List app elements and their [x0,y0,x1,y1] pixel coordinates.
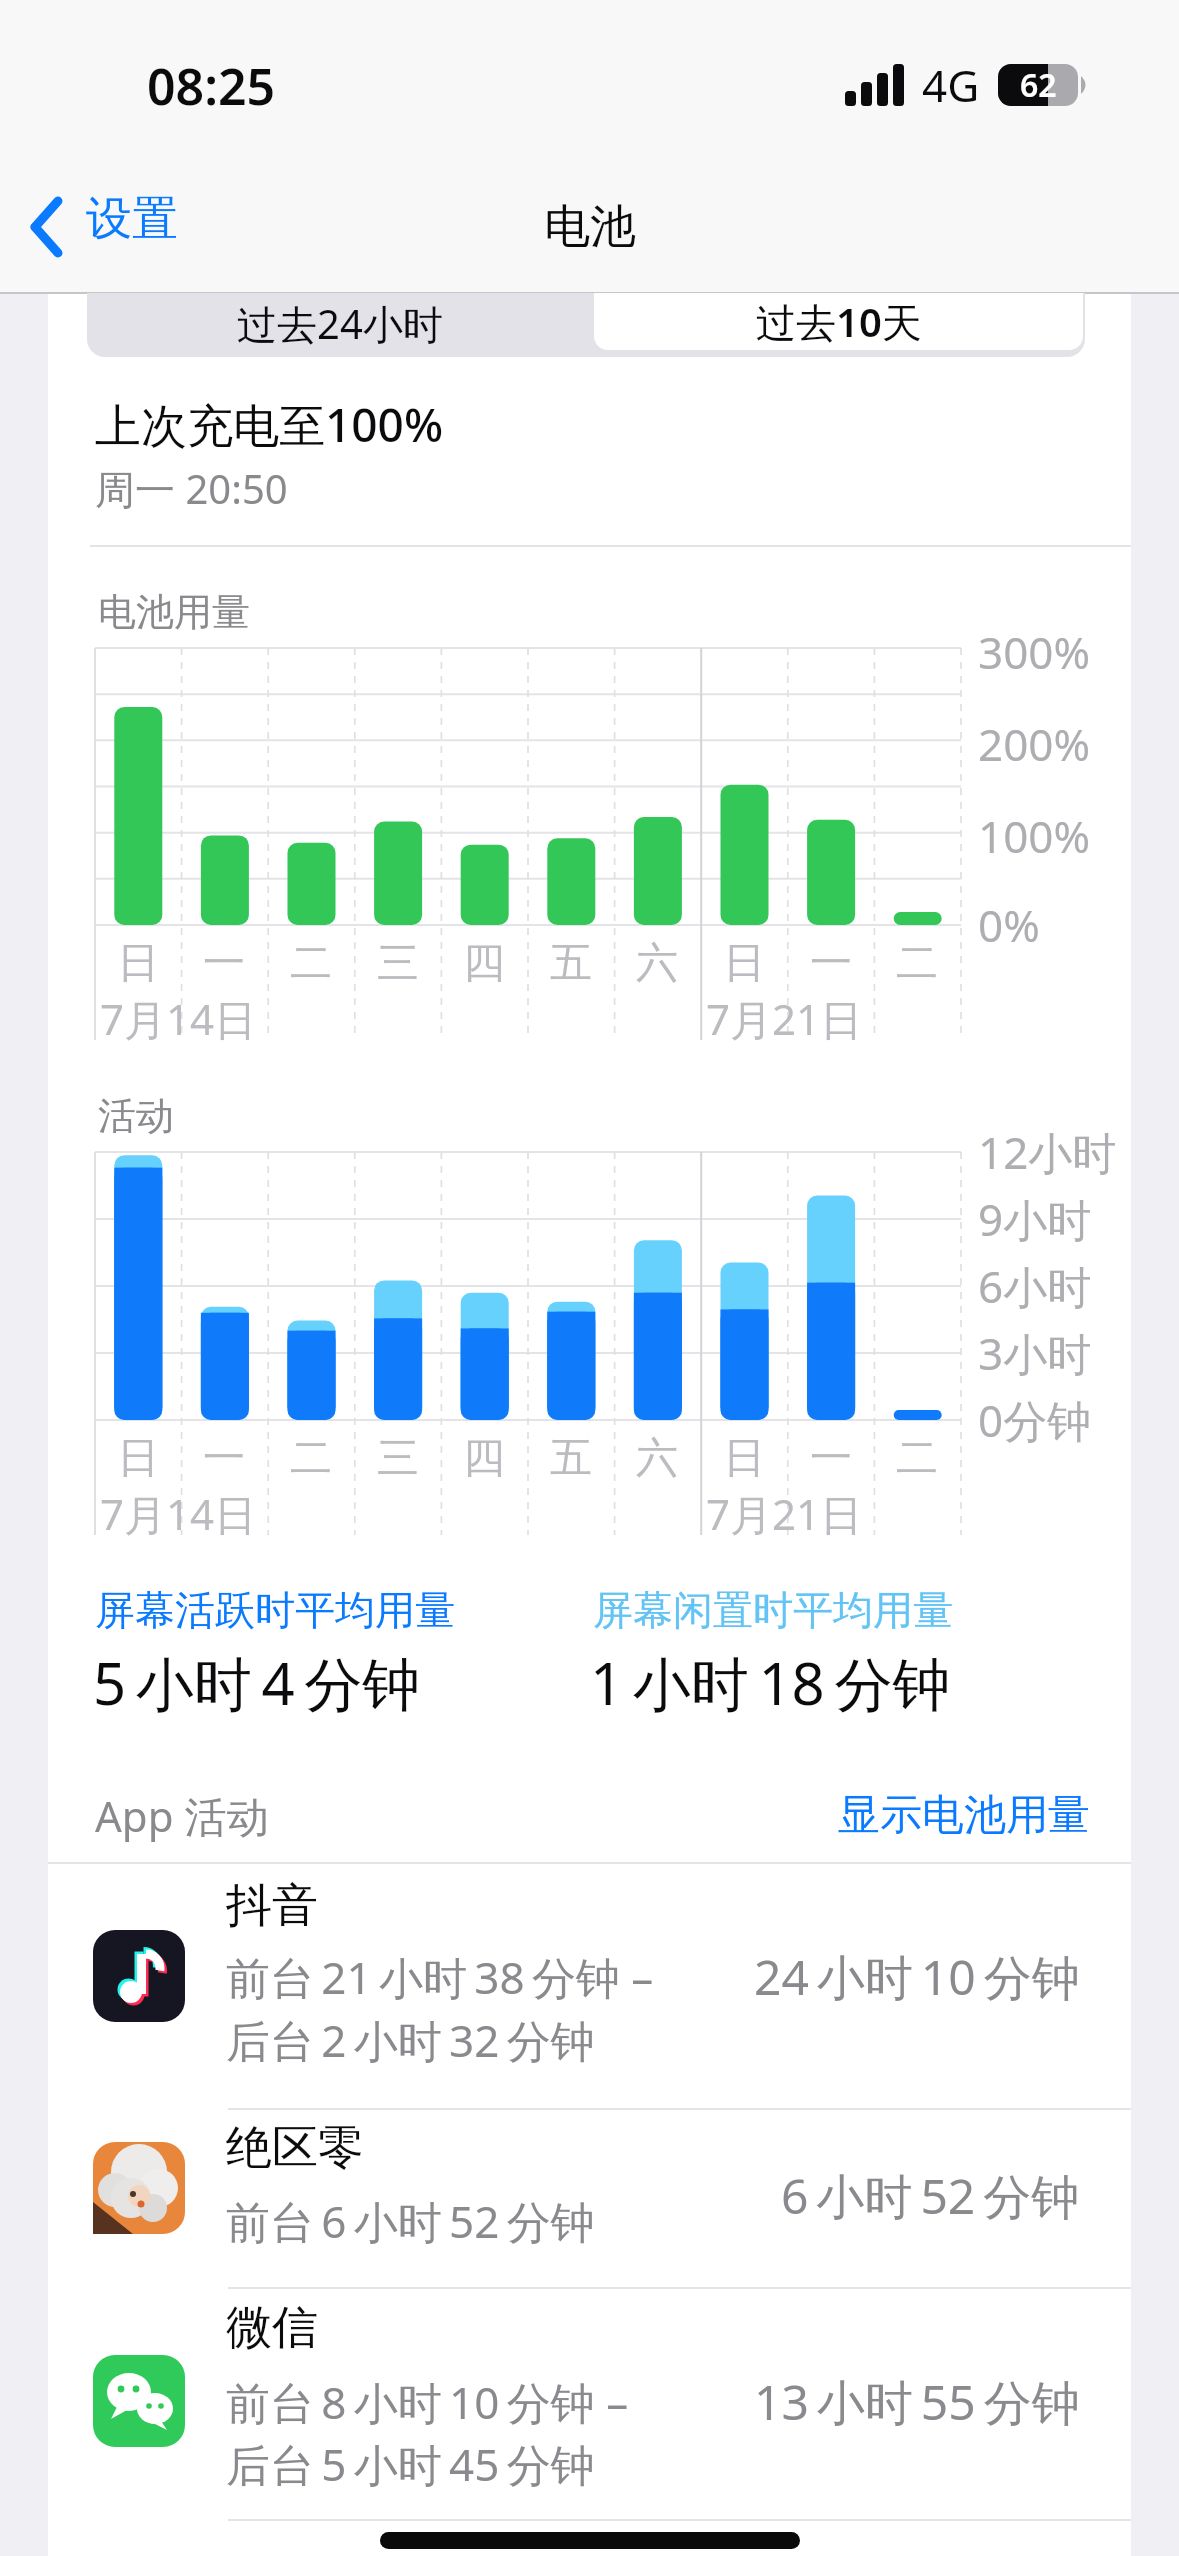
staticText: 过去10天 [756,294,922,349]
staticText: 13 小时 55 分钟 [754,2369,1080,2435]
staticText: 抖音 [226,1877,318,1935]
staticText: 62 [1020,63,1057,107]
button[interactable]: 过去10天 [594,293,1083,350]
staticText: 3小时 [978,1323,1092,1383]
staticText: 微信 [226,2299,318,2357]
staticText: 9小时 [978,1189,1092,1249]
staticText: 二 [290,937,332,990]
staticText: 后台 2 小时 32 分钟 [226,2010,595,2070]
staticText: 绝区零 [226,2119,364,2177]
staticText: 二 [290,1432,332,1485]
staticText: 62 [1020,63,1057,107]
staticText: 6 小时 52 分钟 [781,2163,1080,2229]
staticText: 5 小时 4 分钟 [93,1643,421,1722]
button[interactable] [48,2288,1131,2520]
staticText: 100% [978,806,1091,866]
staticText: 六 [636,1432,678,1485]
staticText: 五 [550,1432,592,1485]
staticText: 7月14日 [100,990,257,1047]
button[interactable]: 设置 [20,196,220,260]
staticText: 12小时 [978,1122,1117,1182]
staticText: 三 [377,937,419,990]
staticText: 6小时 [978,1256,1092,1316]
staticText: 日 [117,937,159,990]
staticText: 7月21日 [706,990,863,1047]
staticText: 日 [723,1432,765,1485]
staticText: 三 [377,1432,419,1485]
staticText: 一 [810,937,852,990]
staticText: 设置 [86,190,178,248]
staticText: 1 小时 18 分钟 [590,1643,951,1722]
staticText: 4G [922,55,980,115]
staticText: 24 小时 10 分钟 [754,1944,1080,2010]
staticText: 前台 6 小时 52 分钟 [226,2191,595,2251]
staticText: 二 [896,937,938,990]
staticText: 一 [203,937,245,990]
staticText: 一 [203,1432,245,1485]
staticText: 四 [463,937,505,990]
staticText: 周一 20:50 [95,461,288,516]
staticText: 过去24小时 [237,296,443,351]
staticText: 一 [810,1432,852,1485]
button[interactable]: 显示电池用量 [700,1785,1090,1845]
button[interactable] [48,2109,1131,2287]
staticText: 活动 [98,1092,174,1140]
staticText: 0% [978,895,1040,955]
staticText: 五 [550,937,592,990]
button[interactable]: 过去24小时 [87,293,592,353]
staticText: 前台 8 小时 10 分钟 – [226,2372,629,2432]
staticText: 电池 [544,198,636,256]
staticText: 7月21日 [706,1485,863,1542]
staticText: 200% [978,714,1091,774]
staticText: 显示电池用量 [838,1789,1090,1842]
staticText: 二 [896,1432,938,1485]
staticText: 前台 21 小时 38 分钟 – [226,1947,654,2007]
staticText: 300% [978,622,1091,682]
staticText: 日 [117,1432,159,1485]
staticText: 六 [636,937,678,990]
staticText: 08:25 [147,52,276,120]
staticText: 日 [723,937,765,990]
staticText: 后台 5 小时 45 分钟 [226,2434,595,2494]
staticText: 7月14日 [100,1485,257,1542]
staticText: 上次充电至100% [95,393,444,456]
staticText: 0分钟 [978,1390,1092,1450]
staticText: 屏幕活跃时平均用量 [95,1585,455,1635]
button[interactable] [48,1863,1131,2108]
staticText: App 活动 [95,1787,269,1844]
staticText: 电池用量 [98,588,250,636]
staticText: 四 [463,1432,505,1485]
staticText: 屏幕闲置时平均用量 [593,1585,953,1635]
